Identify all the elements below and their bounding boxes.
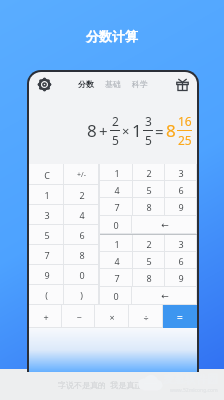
staticText: 2 <box>146 167 152 179</box>
staticText: 1 <box>114 238 120 250</box>
staticText: 3 <box>44 209 50 221</box>
button[interactable]: 8 <box>64 245 99 265</box>
staticText: = <box>155 121 164 141</box>
button[interactable]: 基础 <box>104 77 122 91</box>
button[interactable]: 4 <box>100 252 133 269</box>
button[interactable]: ÷ <box>129 305 163 328</box>
staticText: 2 <box>112 113 119 129</box>
staticText: 4 <box>79 209 85 221</box>
button[interactable]: 7 <box>29 245 64 265</box>
staticText: 5 <box>44 229 50 241</box>
button[interactable]: ( <box>29 285 64 305</box>
button[interactable]: 1 <box>100 235 133 252</box>
staticText: 7 <box>44 249 50 261</box>
staticText: 4 <box>114 255 120 267</box>
staticText: 9 <box>178 201 184 213</box>
staticText: C <box>44 169 50 181</box>
staticText: − <box>76 311 82 323</box>
button[interactable]: 2 <box>133 235 165 252</box>
button[interactable]: Settings <box>35 75 53 93</box>
staticText: 字说不是真的 我是真正 <box>58 379 143 390</box>
staticText: ← <box>161 220 169 230</box>
button[interactable]: + <box>29 305 62 328</box>
button[interactable]: C <box>29 164 64 185</box>
staticText: 8 <box>166 119 176 142</box>
button[interactable]: × <box>95 305 129 328</box>
button[interactable]: − <box>62 305 95 328</box>
button[interactable]: 6 <box>165 252 197 269</box>
staticText: 0 <box>113 290 119 302</box>
button[interactable]: 3 <box>29 205 64 225</box>
staticText: + <box>43 311 49 323</box>
button[interactable]: 5 <box>133 252 165 269</box>
staticText: 9 <box>44 269 50 281</box>
button[interactable]: 分数 <box>77 77 95 91</box>
staticText: 5 <box>145 132 152 148</box>
staticText: ← <box>161 291 169 301</box>
staticText: 8 <box>146 272 152 284</box>
staticText: 8 <box>87 119 97 142</box>
staticText: ) <box>80 289 83 301</box>
button[interactable]: 4 <box>64 205 99 225</box>
staticText: 1 <box>132 119 142 142</box>
staticText: +/- <box>77 170 86 180</box>
staticText: × <box>109 311 115 323</box>
staticText: 3 <box>178 238 184 250</box>
button[interactable]: 7 <box>100 198 133 216</box>
button[interactable]: ← <box>132 216 197 234</box>
staticText: 6 <box>178 184 184 196</box>
staticText: 3 <box>178 167 184 179</box>
button[interactable]: 9 <box>29 265 64 285</box>
staticText: 3 <box>145 113 152 129</box>
staticText: = <box>177 310 183 324</box>
button[interactable]: 3 <box>165 235 197 252</box>
button[interactable]: 4 <box>100 181 133 198</box>
button[interactable]: 2 <box>64 185 99 205</box>
staticText: ÷ <box>143 311 149 323</box>
button[interactable]: 8 <box>133 198 165 216</box>
staticText: 0 <box>79 269 85 281</box>
staticText: 7 <box>114 201 120 213</box>
button[interactable]: ← <box>132 287 197 305</box>
button[interactable]: 0 <box>100 216 132 234</box>
staticText: www.52micong.com <box>170 387 218 394</box>
button[interactable]: 6 <box>64 225 99 245</box>
button[interactable]: 7 <box>100 269 133 287</box>
button[interactable]: 2 <box>133 164 165 181</box>
button[interactable]: 6 <box>165 181 197 198</box>
button[interactable]: 5 <box>133 181 165 198</box>
staticText: 4 <box>114 184 120 196</box>
button[interactable]: 1 <box>29 185 64 205</box>
staticText: 5 <box>146 184 152 196</box>
button[interactable]: 9 <box>165 198 197 216</box>
button[interactable]: 9 <box>165 269 197 287</box>
staticText: 分数计算 <box>86 28 138 44</box>
staticText: 6 <box>178 255 184 267</box>
button[interactable]: +/- <box>64 164 99 185</box>
staticText: 7 <box>114 272 120 284</box>
button[interactable]: 3 <box>165 164 197 181</box>
staticText: 9 <box>178 272 184 284</box>
staticText: × <box>122 122 130 140</box>
button[interactable]: 科学 <box>131 77 149 91</box>
button[interactable]: 1 <box>100 164 133 181</box>
staticText: 0 <box>113 219 119 231</box>
button[interactable]: ) <box>64 285 99 305</box>
button[interactable]: 8 <box>133 269 165 287</box>
button[interactable]: 0 <box>64 265 99 285</box>
staticText: 2 <box>146 238 152 250</box>
staticText: + <box>99 121 108 141</box>
staticText: 分数 <box>78 79 94 89</box>
staticText: 6 <box>79 229 85 241</box>
staticText: 2 <box>79 189 85 201</box>
button[interactable]: = <box>163 305 197 328</box>
button[interactable]: Gift <box>173 75 191 93</box>
staticText: 科学 <box>132 79 148 89</box>
button[interactable]: 0 <box>100 287 132 305</box>
staticText: 25 <box>178 132 192 148</box>
staticText: 16 <box>178 113 192 129</box>
button[interactable]: 5 <box>29 225 64 245</box>
staticText: 8 <box>146 201 152 213</box>
staticText: 8 <box>79 249 85 261</box>
